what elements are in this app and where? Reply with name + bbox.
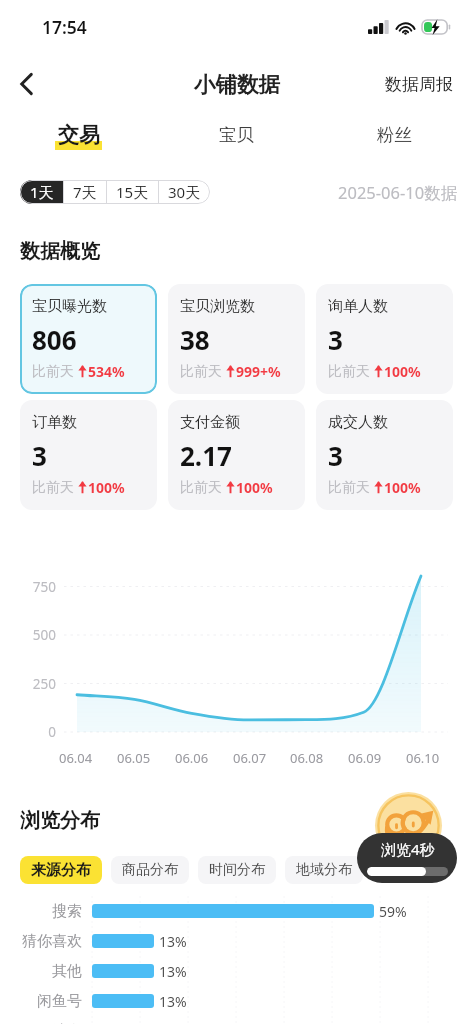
staticText: 3 — [328, 438, 343, 473]
staticText: 250 — [8, 675, 56, 693]
button[interactable]: 宝贝浏览数 — [168, 284, 305, 394]
staticText: 比前天 — [328, 363, 370, 381]
staticText: 0 — [8, 723, 56, 741]
button[interactable]: 15天 — [106, 180, 158, 204]
staticText: 06.10 — [406, 749, 440, 767]
button[interactable]: 订单数 — [20, 400, 157, 510]
staticText: 订单数 — [32, 413, 77, 432]
staticText: 询单人数 — [328, 297, 388, 316]
button[interactable]: 宝贝 — [157, 114, 315, 156]
staticText: 闲鱼号 — [0, 992, 82, 1011]
button[interactable]: 粉丝 — [315, 114, 473, 156]
button[interactable]: 30天 — [158, 180, 210, 204]
staticText: 3 — [32, 438, 47, 473]
staticText: 13% — [159, 962, 187, 981]
staticText: 搜索 — [0, 902, 82, 921]
button[interactable]: 商品分布 — [111, 856, 189, 884]
staticText: 3 — [328, 322, 343, 357]
staticText: 2.17 — [180, 438, 232, 473]
staticText: 2025-06-10数据 — [338, 181, 458, 204]
button[interactable]: 来源分布 — [20, 856, 102, 884]
staticText: 06.07 — [233, 749, 267, 767]
button[interactable]: 时间分布 — [198, 856, 276, 884]
button[interactable]: 支付金额 — [168, 400, 305, 510]
staticText: 06.04 — [59, 749, 93, 767]
staticText: 比前天 — [180, 363, 222, 381]
staticText: 来源分布 — [31, 861, 91, 880]
staticText: 小铺数据 — [194, 71, 280, 98]
staticText: 商品分布 — [122, 861, 178, 879]
staticText: 7天 — [73, 182, 97, 202]
staticText: 38 — [180, 322, 210, 357]
staticText: 数据周报 — [385, 74, 453, 95]
staticText: 时间分布 — [209, 861, 265, 879]
staticText: 宝贝曝光数 — [32, 297, 107, 316]
staticText: 999+% — [236, 362, 281, 381]
staticText: 100% — [88, 478, 125, 497]
button[interactable]: 数据周报 — [379, 68, 459, 101]
staticText: 750 — [8, 578, 56, 596]
staticText: 534% — [88, 362, 125, 381]
staticText: 数据概览 — [20, 239, 100, 264]
staticText: 比前天 — [32, 479, 74, 497]
staticText: 比前天 — [328, 479, 370, 497]
staticText: 浏览4秒 — [381, 839, 435, 859]
button[interactable]: 交易 — [0, 114, 157, 156]
button[interactable]: 浏览4秒 — [357, 833, 457, 883]
staticText: 比前天 — [180, 479, 222, 497]
staticText: 13% — [159, 932, 187, 951]
staticText: 06.09 — [348, 749, 382, 767]
staticText: 比前天 — [32, 363, 74, 381]
staticText: 15天 — [116, 182, 149, 202]
staticText: 宝贝浏览数 — [180, 297, 255, 316]
staticText: 100% — [384, 362, 421, 381]
staticText: 粉丝 — [377, 124, 412, 146]
staticText: 59% — [379, 902, 407, 921]
staticText: 06.05 — [117, 749, 151, 767]
staticText: 17:54 — [42, 15, 87, 39]
staticText: 806 — [32, 322, 77, 357]
staticText: 100% — [384, 478, 421, 497]
staticText: 地域分布 — [296, 861, 352, 879]
staticText: 100% — [236, 478, 273, 497]
staticText: 成交人数 — [328, 413, 388, 432]
staticText: 13% — [159, 992, 187, 1011]
button[interactable]: 7天 — [63, 180, 106, 204]
staticText: 猜你喜欢 — [0, 932, 82, 951]
staticText: 06.08 — [290, 749, 324, 767]
button[interactable]: 地域分布 — [285, 856, 363, 884]
staticText: 站内 — [0, 1022, 82, 1024]
staticText: 宝贝 — [219, 124, 254, 146]
button[interactable]: 宝贝曝光数 — [20, 284, 157, 394]
staticText: 浏览分布 — [20, 808, 100, 833]
staticText: 其他 — [0, 962, 82, 981]
button[interactable]: 询单人数 — [316, 284, 453, 394]
button[interactable]: 返回 — [5, 62, 49, 106]
button[interactable]: 成交人数 — [316, 400, 453, 510]
staticText: 500 — [8, 626, 56, 644]
staticText: 30天 — [168, 182, 201, 202]
staticText: 交易 — [58, 122, 100, 148]
staticText: 1天 — [30, 182, 54, 202]
staticText: 06.06 — [175, 749, 209, 767]
staticText: 支付金额 — [180, 413, 240, 432]
button[interactable]: 1天 — [20, 180, 63, 204]
